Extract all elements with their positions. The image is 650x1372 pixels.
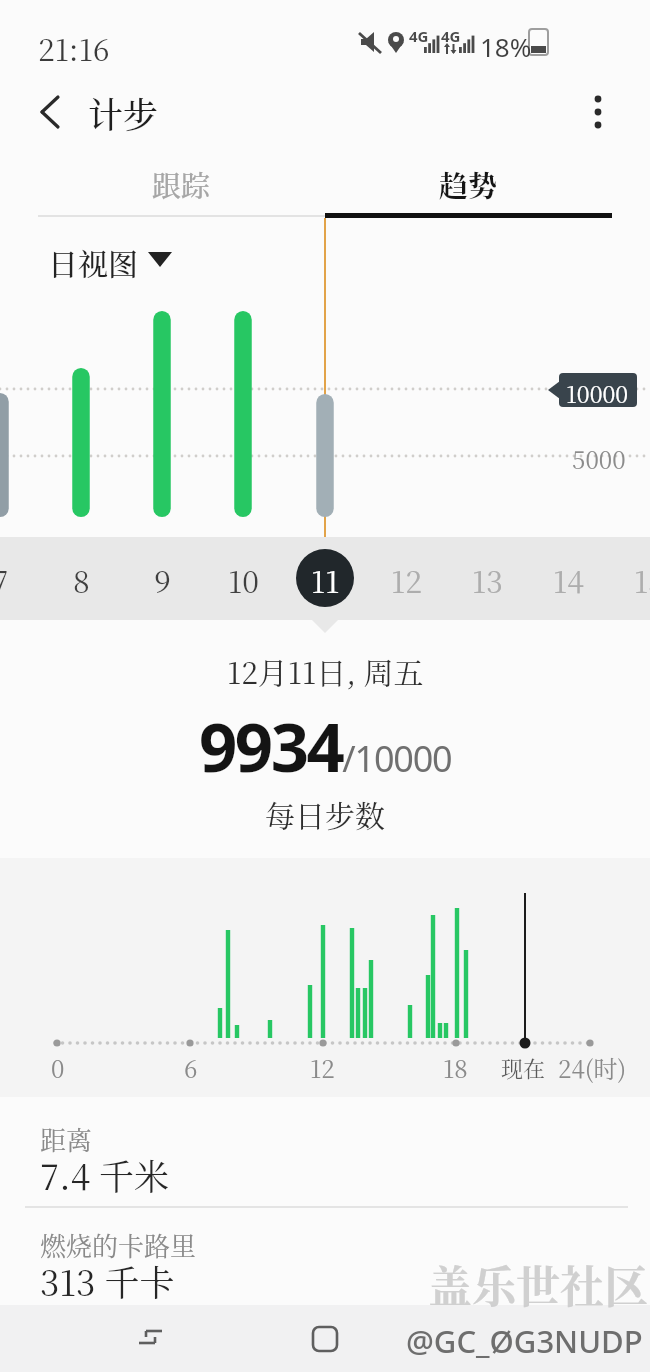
staticText: 12月11日, 周五 [227,649,424,692]
staticText: 6 [184,1050,198,1084]
button[interactable] [30,90,74,134]
staticText: 日视图 [48,240,138,280]
button[interactable]: 8 [41,540,121,618]
button[interactable]: 15 [609,540,650,618]
staticText: 12 [310,1050,335,1084]
button[interactable]: 日视图 [44,240,180,280]
staticText: @GC_ØG3NUDP [406,1320,643,1362]
staticText: 9934/10000 [199,700,452,791]
button[interactable] [578,90,622,134]
staticText: 5000 [572,441,626,475]
staticText: 14 [553,558,584,601]
staticText: 10000 [566,377,629,410]
staticText: 13 [472,558,503,601]
button[interactable]: 12 [366,540,446,618]
button[interactable]: 距离 [0,1100,650,1206]
button[interactable]: 11 [285,540,365,618]
staticText: 10 [228,558,259,601]
staticText: 趋势 [439,164,498,206]
staticText: 8 [73,558,90,601]
button[interactable]: 趋势 [325,155,612,215]
button[interactable] [270,1305,380,1372]
staticText: 0 [51,1050,65,1084]
button[interactable]: 燃烧的卡路里 [0,1208,650,1305]
staticText: 4G [441,26,461,46]
staticText: 燃烧的卡路里 [40,1226,197,1263]
staticText: 盖乐世社区 [428,1252,648,1315]
staticText: 现在 [501,1052,546,1084]
staticText: 跟踪 [152,164,211,206]
staticText: 9 [154,558,171,601]
button[interactable]: 14 [528,540,608,618]
button[interactable] [110,1305,220,1372]
staticText: 距离 [40,1120,93,1157]
staticText: 4G [409,26,429,46]
staticText: 18% [480,29,532,64]
staticText: 15 [634,558,650,601]
button[interactable]: 跟踪 [38,155,325,215]
staticText: 24(时) [558,1050,627,1084]
staticText: 7 [0,558,9,601]
staticText: 18 [443,1050,468,1084]
staticText: 21:16 [38,26,110,69]
staticText: 计步 [88,88,159,138]
staticText: 313 千卡 [40,1256,175,1306]
staticText: 每日步数 [265,792,385,835]
button[interactable]: 9 [122,540,202,618]
button[interactable] [430,1305,540,1372]
button[interactable]: 13 [447,540,527,618]
staticText: 12 [391,558,422,601]
staticText: 7.4 千米 [40,1150,170,1200]
button[interactable]: 7 [0,540,40,618]
button[interactable]: 10 [203,540,283,618]
staticText: 11 [311,558,340,601]
